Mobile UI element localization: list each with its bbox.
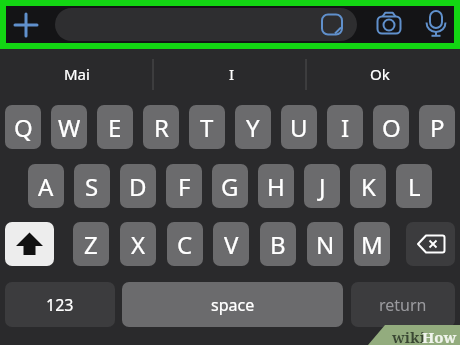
staticText: O	[382, 111, 401, 144]
staticText: J	[319, 170, 326, 203]
staticText: M	[361, 228, 383, 261]
button[interactable]: Q	[5, 105, 41, 149]
button[interactable]	[422, 9, 450, 39]
staticText: I	[341, 111, 350, 144]
button[interactable]: 123	[5, 282, 115, 327]
button[interactable]: X	[120, 222, 156, 266]
staticText: Ok	[370, 64, 390, 84]
button[interactable]: K	[350, 164, 386, 208]
staticText: N	[316, 228, 335, 261]
button[interactable]: E	[97, 105, 133, 149]
staticText: V	[224, 228, 239, 261]
staticText: Z	[84, 228, 98, 261]
button[interactable]: G	[212, 164, 248, 208]
button[interactable]	[5, 222, 54, 266]
button[interactable]: D	[120, 164, 156, 208]
button[interactable]: A	[28, 164, 64, 208]
button[interactable]: V	[213, 222, 249, 266]
staticText: Mai	[64, 64, 90, 84]
staticText: Q	[14, 111, 33, 144]
button[interactable]: P	[419, 105, 455, 149]
staticText: E	[108, 111, 122, 144]
button[interactable]: M	[354, 222, 390, 266]
button[interactable]	[374, 10, 404, 38]
staticText: U	[290, 111, 308, 144]
staticText: T	[200, 111, 214, 144]
button[interactable]	[55, 8, 357, 41]
staticText: H	[267, 170, 285, 203]
button[interactable]: F	[166, 164, 202, 208]
button[interactable]: W	[51, 105, 87, 149]
button[interactable]: J	[304, 164, 340, 208]
button[interactable]: L	[396, 164, 432, 208]
button[interactable]: R	[143, 105, 179, 149]
button[interactable]	[12, 11, 40, 39]
button[interactable]: S	[74, 164, 110, 208]
button[interactable]: I	[180, 57, 284, 91]
staticText: I	[229, 64, 235, 84]
staticText: G	[221, 170, 239, 203]
staticText: 123	[46, 294, 74, 316]
staticText: X	[131, 228, 146, 261]
button[interactable]: Z	[73, 222, 109, 266]
staticText: S	[85, 170, 99, 203]
button[interactable]: B	[260, 222, 296, 266]
button[interactable]	[406, 222, 455, 266]
staticText: return	[379, 294, 427, 316]
button[interactable]: T	[189, 105, 225, 149]
button[interactable]	[318, 10, 346, 38]
button[interactable]: U	[281, 105, 317, 149]
staticText: F	[178, 170, 191, 203]
button[interactable]: N	[307, 222, 343, 266]
button[interactable]: C	[167, 222, 203, 266]
staticText: B	[270, 228, 286, 261]
button[interactable]: Ok	[328, 57, 432, 91]
staticText: C	[177, 228, 193, 261]
staticText: D	[129, 170, 147, 203]
button[interactable]: return	[351, 282, 455, 327]
staticText: P	[430, 111, 445, 144]
button[interactable]: O	[373, 105, 409, 149]
staticText: R	[154, 111, 169, 144]
staticText: L	[408, 170, 421, 203]
button[interactable]: Mai	[25, 57, 129, 91]
staticText: A	[38, 170, 54, 203]
button[interactable]: space	[122, 282, 343, 327]
staticText: W	[58, 111, 81, 144]
button[interactable]: Y	[235, 105, 271, 149]
button[interactable]: I	[327, 105, 363, 149]
staticText: K	[361, 170, 376, 203]
staticText: Y	[246, 111, 260, 144]
staticText: How	[422, 327, 457, 345]
staticText: wiki	[392, 327, 425, 345]
staticText: space	[211, 294, 255, 316]
button[interactable]: H	[258, 164, 294, 208]
